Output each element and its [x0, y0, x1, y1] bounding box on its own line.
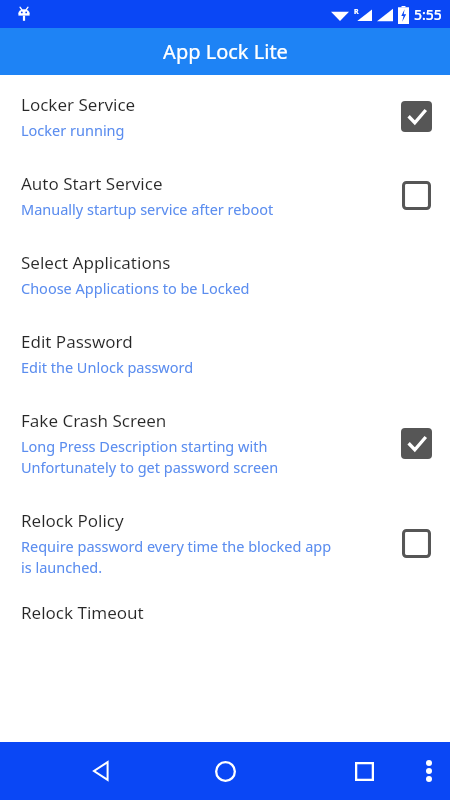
staticText: Fake Crash Screen: [21, 409, 167, 432]
button[interactable]: Recent apps: [348, 755, 380, 787]
staticText: Long Press Description starting with: [21, 436, 268, 456]
button[interactable]: Back: [86, 755, 118, 787]
staticText: Choose Applications to be Locked: [21, 278, 250, 298]
button[interactable]: Relock Policy: [0, 501, 450, 597]
staticText: R: [354, 7, 359, 17]
staticText: Select Applications: [21, 251, 171, 274]
staticText: Locker Service: [21, 93, 136, 116]
staticText: Locker running: [21, 120, 125, 140]
staticText: Unfortunately to get password screen: [21, 457, 279, 477]
staticText: App Lock Lite: [163, 38, 288, 65]
staticText: 5:55: [414, 5, 442, 24]
staticText: Auto Start Service: [21, 172, 163, 195]
staticText: Require password every time the blocked …: [21, 536, 332, 556]
staticText: Edit Password: [21, 330, 133, 353]
button[interactable]: Edit Password: [0, 322, 450, 401]
staticText: Edit the Unlock password: [21, 357, 194, 377]
button[interactable]: More options: [414, 756, 444, 786]
button[interactable]: Enabled, checked: [401, 101, 432, 132]
button[interactable]: Enabled, checked: [401, 428, 432, 459]
button[interactable]: Disabled, unchecked: [401, 180, 432, 211]
staticText: Relock Policy: [21, 509, 124, 532]
button[interactable]: Select Applications: [0, 243, 450, 322]
button[interactable]: Fake Crash Screen: [0, 401, 450, 501]
button[interactable]: Home: [208, 754, 242, 788]
button[interactable]: Disabled, unchecked: [401, 528, 432, 559]
button[interactable]: Relock Timeout: [0, 597, 450, 644]
staticText: Manually startup service after reboot: [21, 199, 274, 219]
button[interactable]: Locker Service: [0, 75, 450, 164]
staticText: is launched.: [21, 557, 103, 577]
button[interactable]: Auto Start Service: [0, 164, 450, 243]
staticText: Relock Timeout: [21, 601, 144, 624]
